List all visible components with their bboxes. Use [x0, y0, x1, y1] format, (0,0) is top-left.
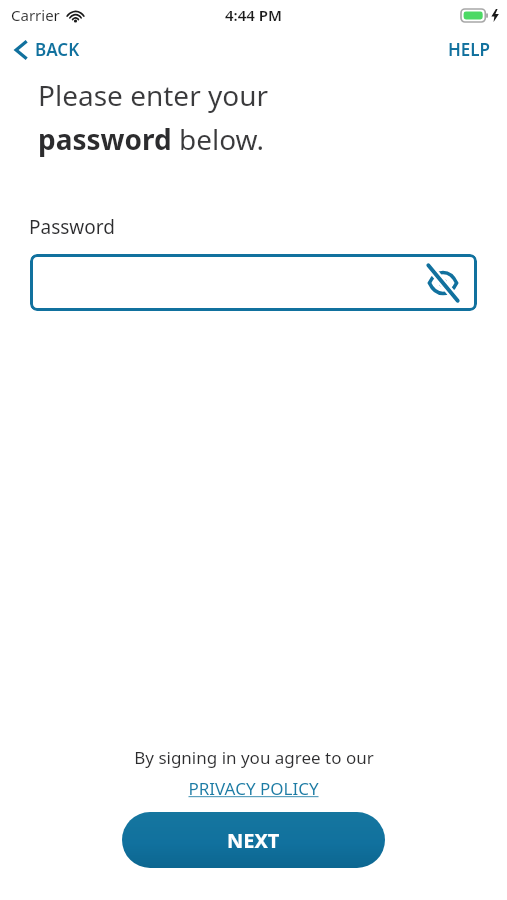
staticText: Please enter your password below.	[38, 76, 269, 158]
button[interactable]: Show password	[30, 254, 477, 311]
button[interactable]: PRIVACY POLICY	[180, 776, 327, 801]
button[interactable]: BACK	[0, 34, 92, 65]
staticText: By signing in you agree to our	[134, 746, 374, 769]
staticText: PRIVACY POLICY	[188, 777, 319, 800]
staticText: Carrier	[11, 5, 60, 25]
button[interactable]: NEXT	[122, 812, 385, 868]
staticText: Password	[29, 214, 115, 240]
staticText: BACK	[35, 38, 80, 61]
button[interactable]: HELP	[432, 34, 507, 65]
staticText: 4:44 PM	[225, 5, 282, 25]
staticText: HELP	[448, 38, 491, 61]
staticText: NEXT	[227, 827, 280, 854]
button[interactable]: Show password	[423, 263, 463, 303]
